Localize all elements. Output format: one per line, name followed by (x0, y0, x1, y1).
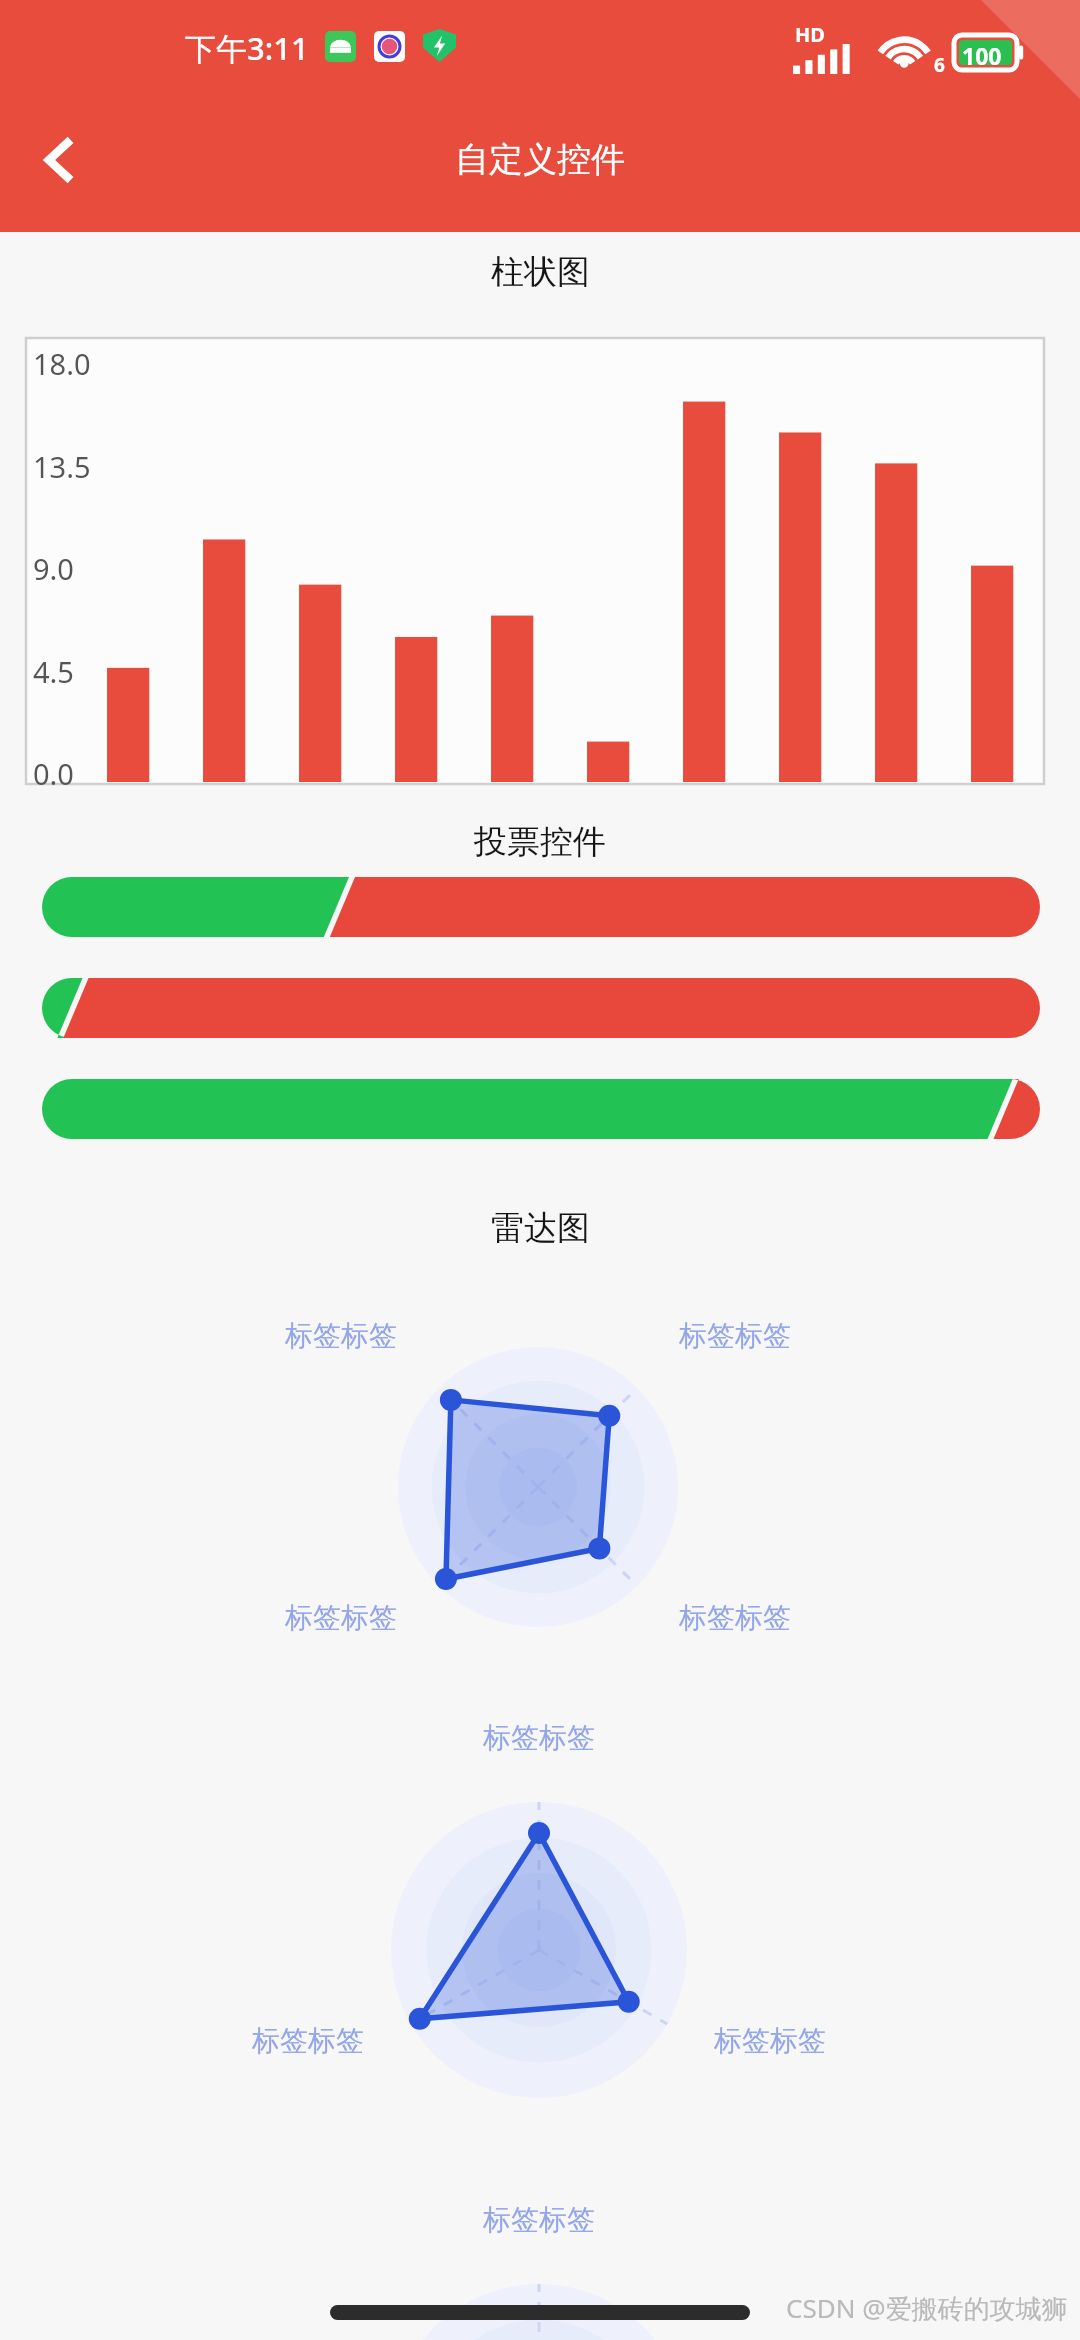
staticText: 18.0 (33, 344, 91, 383)
button[interactable] (42, 978, 1040, 1038)
staticText: CSDN @爱搬砖的攻城狮 (786, 2290, 1068, 2326)
staticText: HD (795, 21, 825, 48)
staticText: 标签标签 (247, 1318, 397, 1353)
staticText: 标签标签 (679, 1318, 829, 1353)
staticText: 6 (934, 52, 945, 78)
staticText: 标签标签 (679, 1600, 829, 1635)
button[interactable] (42, 877, 1040, 937)
staticText: 标签标签 (424, 1720, 654, 1755)
staticText: 柱状图 (491, 251, 590, 293)
staticText: 4.5 (33, 652, 74, 691)
staticText: 标签标签 (214, 2023, 364, 2058)
staticText: 自定义控件 (455, 138, 625, 181)
staticText: 标签标签 (714, 2023, 864, 2058)
staticText: 投票控件 (474, 821, 606, 863)
staticText: 标签标签 (424, 2202, 654, 2237)
staticText: 标签标签 (247, 1600, 397, 1635)
staticText: 下午3:11 (185, 27, 309, 69)
staticText: 13.5 (33, 447, 91, 486)
staticText: 9.0 (33, 549, 74, 588)
staticText: 0.0 (33, 754, 74, 793)
staticText: 雷达图 (491, 1207, 590, 1249)
button[interactable]: Back (18, 118, 102, 202)
staticText: 100 (962, 40, 1002, 71)
button[interactable] (42, 1079, 1040, 1139)
